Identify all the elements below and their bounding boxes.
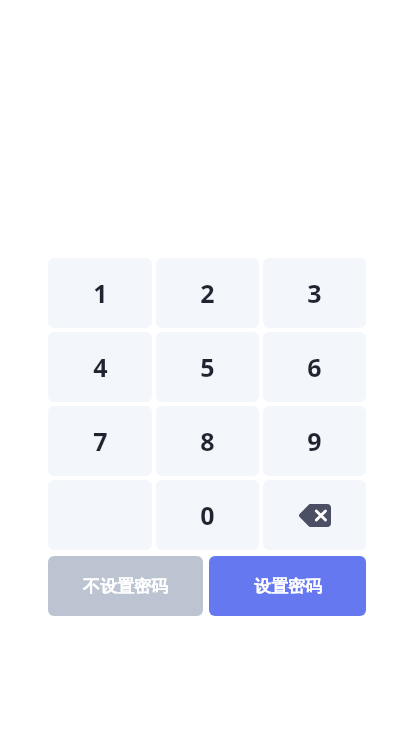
button[interactable]: 6 xyxy=(263,332,366,402)
staticText: 不设置密码 xyxy=(83,576,168,597)
staticText: 9 xyxy=(307,424,322,458)
button[interactable]: 4 xyxy=(48,332,152,402)
staticText: 5 xyxy=(200,350,215,384)
button[interactable]: 8 xyxy=(156,406,259,476)
button[interactable]: 不设置密码 xyxy=(48,556,203,616)
button[interactable]: 9 xyxy=(263,406,366,476)
staticText: 4 xyxy=(93,350,108,384)
staticText: 1 xyxy=(93,276,108,310)
staticText: 7 xyxy=(93,424,108,458)
button[interactable]: 5 xyxy=(156,332,259,402)
button[interactable]: 1 xyxy=(48,258,152,328)
staticText: 2 xyxy=(200,276,215,310)
staticText: 6 xyxy=(307,350,322,384)
button[interactable]: 2 xyxy=(156,258,259,328)
button[interactable]: 设置密码 xyxy=(209,556,366,616)
staticText: 设置密码 xyxy=(254,576,322,597)
button[interactable]: 3 xyxy=(263,258,366,328)
button[interactable]: 0 xyxy=(156,480,259,550)
staticText: 0 xyxy=(200,498,215,532)
button[interactable]: 7 xyxy=(48,406,152,476)
staticText: 8 xyxy=(200,424,215,458)
staticText: 3 xyxy=(307,276,322,310)
button[interactable]: Backspace xyxy=(263,480,366,550)
